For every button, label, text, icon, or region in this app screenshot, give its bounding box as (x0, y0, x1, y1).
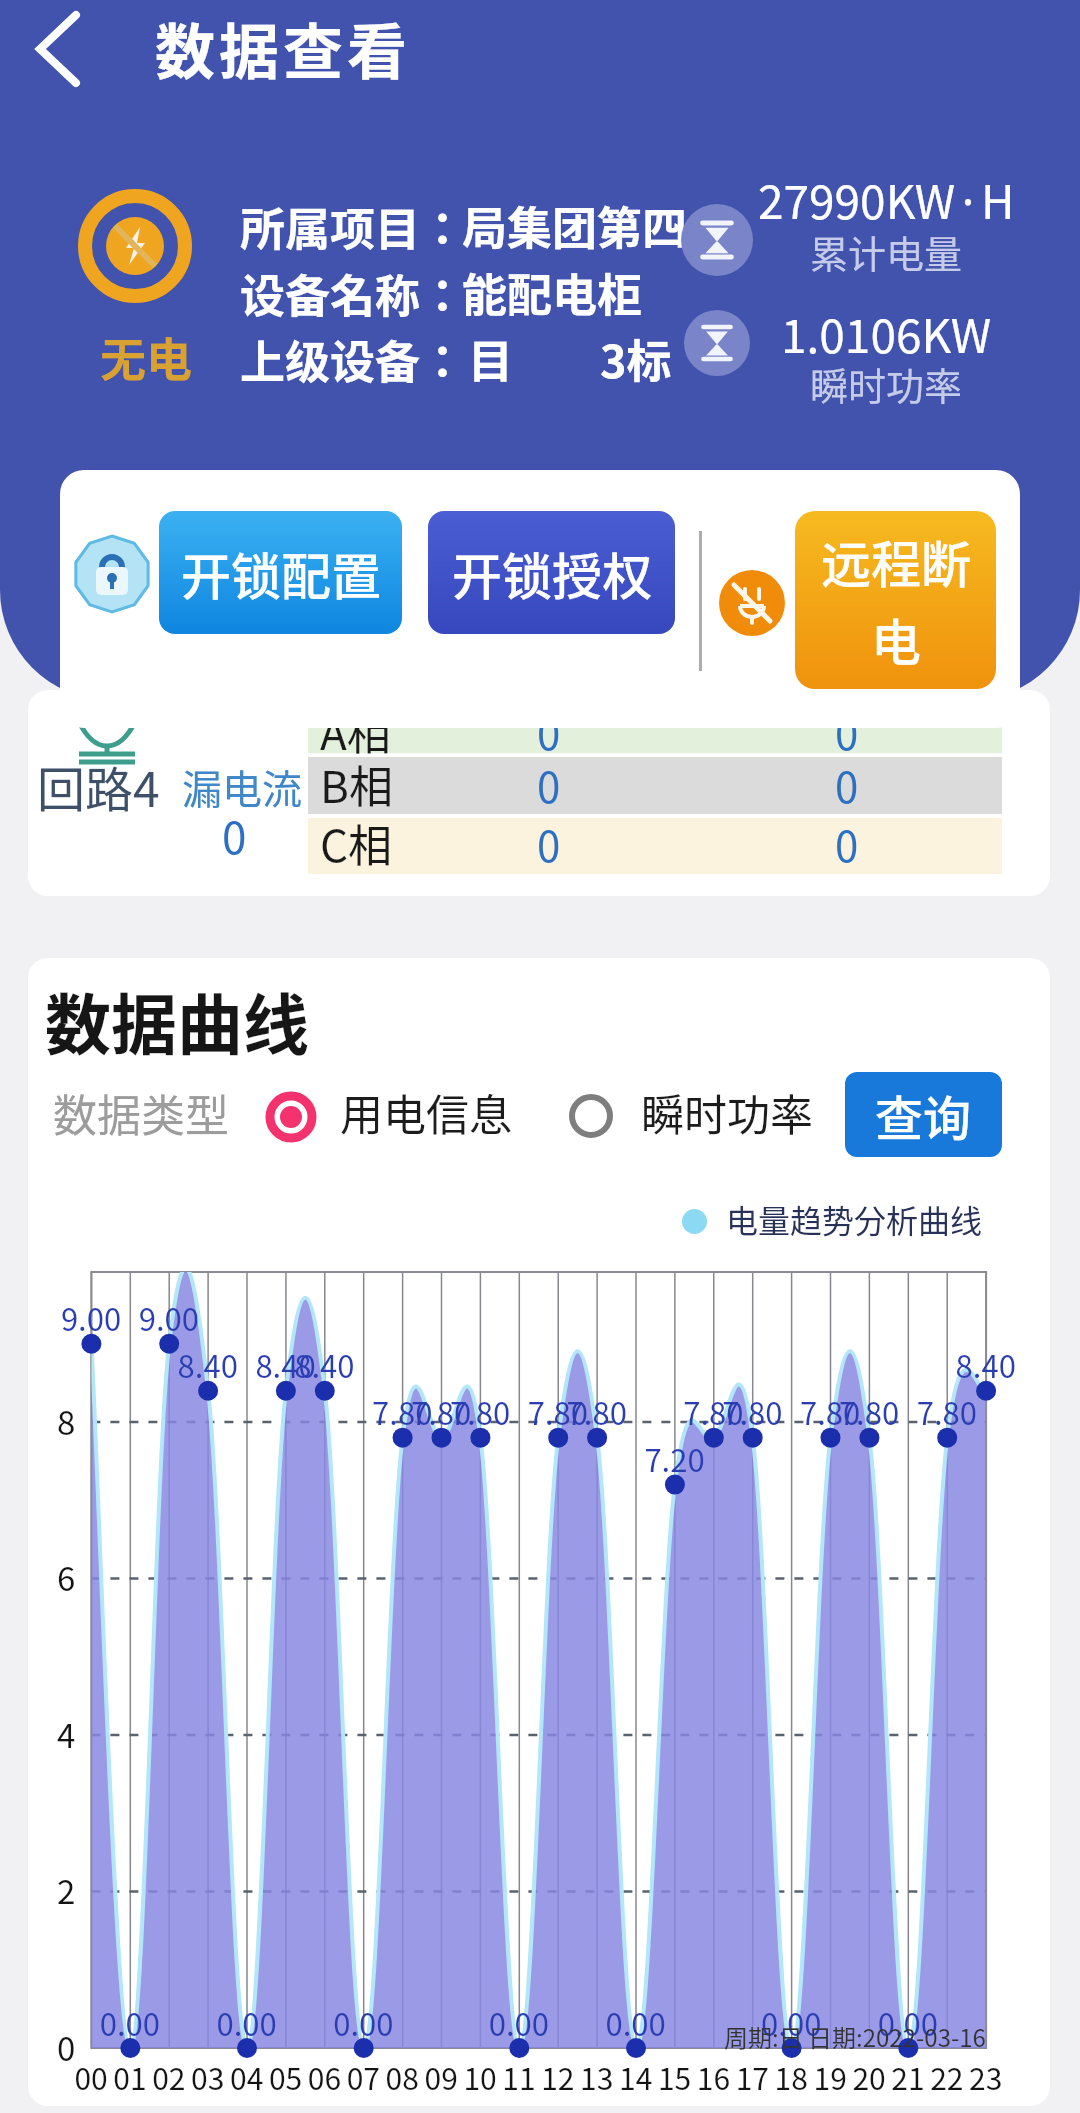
staticText: 开锁配置 (181, 537, 381, 609)
staticText: 上级设备： (240, 327, 466, 392)
staticText: 回路4 (37, 751, 160, 821)
staticText: 查询 (875, 1080, 972, 1150)
staticText: 电 (871, 603, 921, 675)
button[interactable]: 开锁授权 (428, 511, 675, 634)
staticText: 0 (222, 803, 247, 867)
staticText: 0 (537, 813, 561, 874)
staticText: 无电 (100, 323, 192, 390)
staticText: 数据类型 (53, 1081, 229, 1145)
staticText: 数据查看 (155, 4, 411, 91)
staticText: 0 (537, 754, 561, 815)
staticText: 3标 (600, 326, 672, 391)
button[interactable] (560, 1086, 820, 1148)
staticText: 所属项目： (240, 194, 466, 259)
staticText: 电量趋势分析曲线 (726, 1196, 983, 1242)
staticText: 能配电柜 (462, 260, 643, 325)
staticText: 0 (537, 701, 561, 762)
staticText: 数据曲线 (45, 972, 309, 1068)
staticText: 远程断 (821, 525, 971, 597)
staticText: 目 (468, 326, 514, 391)
staticText: 0 (835, 701, 859, 762)
button[interactable]: 远程断 (795, 511, 996, 689)
staticText: 瞬时功率 (641, 1081, 813, 1143)
staticText: 0 (835, 813, 859, 874)
button[interactable] (260, 1086, 520, 1148)
staticText: 局集团第四 (462, 193, 688, 258)
staticText: 27990KW·H (758, 166, 1015, 233)
staticText: 1.0106KW (781, 300, 992, 367)
staticText: 累计电量 (810, 224, 963, 279)
staticText: 瞬时功率 (810, 356, 963, 411)
staticText: 用电信息 (340, 1081, 512, 1143)
button[interactable] (20, 0, 100, 100)
staticText: 漏电流 (182, 758, 302, 816)
staticText: 设备名称： (240, 261, 466, 326)
staticText: B相 (320, 752, 393, 816)
staticText: C相 (320, 811, 393, 875)
staticText: 0 (835, 754, 859, 815)
staticText: 开锁授权 (452, 537, 652, 609)
staticText: A相 (320, 699, 391, 763)
button[interactable]: 开锁配置 (159, 511, 402, 634)
button[interactable]: 查询 (845, 1072, 1002, 1157)
